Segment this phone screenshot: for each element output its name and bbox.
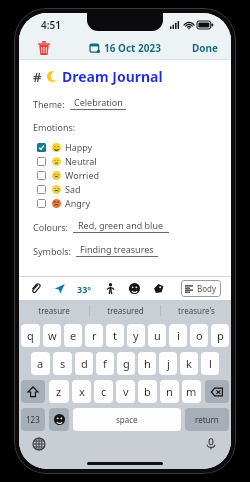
staticText: Emotions: [33, 121, 76, 133]
button[interactable]: g [117, 352, 135, 375]
staticText: y [133, 328, 139, 343]
staticText: e [70, 328, 77, 343]
staticText: Done [192, 41, 219, 55]
staticText: 33° [77, 283, 92, 295]
staticText: treasured [107, 305, 144, 316]
staticText: Celebration [74, 96, 123, 108]
staticText: Theme: [33, 98, 65, 110]
button[interactable]: treasure's [161, 300, 231, 320]
button[interactable]: k [180, 352, 198, 375]
button[interactable]: u [148, 324, 166, 347]
staticText: s [60, 356, 66, 371]
button[interactable]: n [160, 380, 179, 403]
button[interactable]: p [211, 324, 229, 347]
button[interactable]: l [201, 352, 219, 375]
staticText: b [144, 384, 151, 399]
button[interactable]: Tag [152, 282, 165, 295]
staticText: 4:51 [41, 18, 61, 32]
staticText: w [48, 328, 57, 343]
button[interactable]: 33° [75, 283, 94, 295]
button[interactable]: y [127, 324, 145, 347]
staticText: Finding treasures [80, 243, 154, 255]
button[interactable]: q [21, 324, 40, 347]
button[interactable]: 16 Oct 2023 [90, 41, 161, 55]
staticText: Sad [65, 183, 81, 195]
staticText: treasure's [178, 305, 215, 316]
button[interactable]: i [169, 324, 187, 347]
staticText: p [217, 328, 224, 343]
button[interactable]: Sad [33, 182, 219, 196]
button[interactable]: s [53, 352, 72, 375]
button[interactable]: m [182, 380, 201, 403]
staticText: n [166, 384, 173, 399]
button[interactable]: o [190, 324, 208, 347]
staticText: Angry [65, 197, 91, 209]
staticText: d [81, 356, 88, 371]
button[interactable]: f [96, 352, 114, 375]
staticText: Body [197, 283, 217, 294]
button[interactable]: Done [192, 41, 219, 55]
staticText: t [113, 328, 117, 343]
button[interactable]: space [73, 408, 181, 431]
staticText: g [123, 356, 130, 371]
staticText: j [167, 356, 170, 371]
staticText: v [123, 384, 129, 399]
button[interactable]: Backspace [205, 380, 229, 403]
staticText: x [79, 384, 85, 399]
staticText: u [154, 328, 161, 343]
button[interactable]: Person [104, 282, 117, 295]
button[interactable]: Angry [33, 196, 219, 210]
button[interactable]: j [159, 352, 177, 375]
button[interactable]: Emoji [128, 282, 141, 295]
button[interactable]: treasure [19, 300, 89, 320]
staticText: space [116, 414, 138, 425]
button[interactable]: Worried [33, 168, 219, 182]
button[interactable]: Neutral [33, 154, 219, 168]
button[interactable]: treasured [90, 300, 160, 320]
staticText: o [196, 328, 203, 343]
button[interactable]: Attach [29, 282, 42, 295]
staticText: l [209, 356, 212, 371]
button[interactable]: x [72, 380, 91, 403]
button[interactable]: d [75, 352, 93, 375]
button[interactable]: Emoji [49, 408, 69, 431]
staticText: f [103, 356, 107, 371]
staticText: q [27, 328, 34, 343]
button[interactable]: z [49, 380, 69, 403]
button[interactable]: Change keyboard [31, 436, 47, 452]
staticText: Colours: [33, 221, 68, 233]
button[interactable]: t [106, 324, 124, 347]
button[interactable]: r [85, 324, 103, 347]
staticText: c [101, 384, 107, 399]
staticText: z [56, 384, 62, 399]
button[interactable]: Happy [33, 140, 219, 154]
button[interactable]: e [64, 324, 82, 347]
button[interactable]: c [94, 380, 113, 403]
staticText: a [37, 356, 44, 371]
staticText: r [92, 328, 97, 343]
button[interactable]: Delete [33, 37, 55, 59]
staticText: h [144, 356, 151, 371]
staticText: treasure [38, 305, 70, 316]
button[interactable]: Dictate [203, 436, 219, 452]
button[interactable]: b [138, 380, 157, 403]
button[interactable]: Location [53, 282, 66, 295]
staticText: # [33, 68, 42, 86]
staticText: i [177, 328, 180, 343]
staticText: 16 Oct 2023 [104, 41, 161, 55]
staticText: Neutral [65, 155, 97, 167]
button[interactable]: w [43, 324, 61, 347]
staticText: Red, green and blue [78, 219, 164, 231]
staticText: Dream Journal [62, 67, 163, 86]
button[interactable]: return [185, 408, 229, 431]
staticText: return [195, 414, 219, 425]
staticText: m [186, 384, 197, 399]
button[interactable]: h [138, 352, 156, 375]
button[interactable]: v [116, 380, 135, 403]
staticText: Worried [65, 169, 100, 181]
button[interactable]: Body [181, 280, 221, 297]
staticText: Happy [65, 141, 93, 153]
button[interactable]: a [31, 352, 50, 375]
button[interactable]: Shift [21, 380, 45, 403]
button[interactable]: 123 [21, 408, 45, 431]
